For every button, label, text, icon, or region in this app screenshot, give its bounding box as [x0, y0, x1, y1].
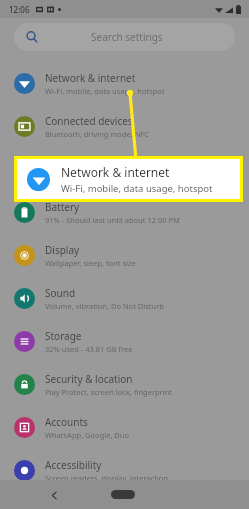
staticText: Accessibility: [45, 458, 102, 472]
staticText: Apps & notifications: [45, 157, 140, 171]
button[interactable]: Sound: [0, 277, 249, 320]
button[interactable]: Accessibility: [0, 449, 249, 492]
staticText: Storage: [45, 329, 82, 343]
button[interactable]: Connected devices: [0, 105, 249, 148]
staticText: Battery: [45, 200, 80, 214]
button[interactable]: Apps & notifications: [0, 148, 249, 191]
button[interactable]: Battery: [0, 191, 249, 234]
staticText: Volume, vibration, Do Not Disturb: [45, 301, 164, 311]
staticText: Wi-Fi, mobile, data usage, hotspot: [61, 182, 213, 195]
button[interactable]: Display: [0, 234, 249, 277]
staticText: 32% used - 43.81 GB free: [45, 344, 133, 354]
staticText: Display: [45, 243, 80, 257]
staticText: Accounts: [45, 415, 88, 429]
staticText: Sound: [45, 286, 76, 300]
button[interactable]: Search settings: [14, 23, 235, 51]
staticText: Bluetooth, driving mode, NFC: [45, 129, 150, 139]
staticText: Network & internet: [45, 71, 136, 85]
button[interactable]: Storage: [0, 320, 249, 363]
staticText: Search settings: [91, 30, 163, 44]
staticText: Security & location: [45, 372, 133, 386]
staticText: Assistant, recent apps, default apps: [45, 172, 170, 182]
button[interactable]: Network & internet: [17, 159, 240, 199]
button[interactable]: Security & location: [0, 363, 249, 406]
staticText: 12:06: [9, 4, 30, 15]
staticText: 91% - Should last until about 12:00 PM: [45, 215, 180, 225]
staticText: Wi-Fi, mobile, data usage, hotspot: [45, 86, 165, 96]
staticText: Play Protect, screen lock, fingerprint: [45, 387, 172, 397]
staticText: Connected devices: [45, 114, 133, 128]
button[interactable]: Accounts: [0, 406, 249, 449]
staticText: Screen readers, display, interaction: [45, 473, 169, 483]
staticText: Wallpaper, sleep, font size: [45, 258, 136, 268]
button[interactable]: Back: [45, 486, 63, 504]
button[interactable]: Network & internet: [0, 62, 249, 105]
staticText: Network & internet: [61, 164, 170, 180]
button[interactable]: Home: [111, 490, 135, 499]
staticText: WhatsApp, Google, Duo: [45, 430, 130, 440]
